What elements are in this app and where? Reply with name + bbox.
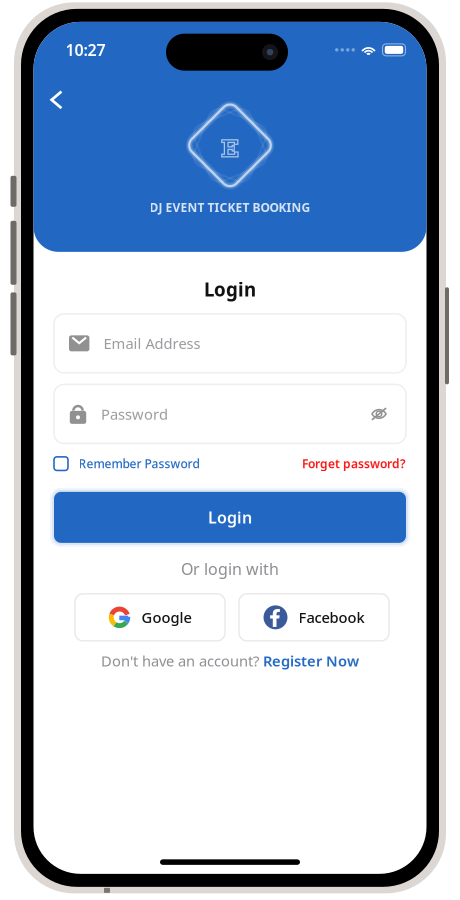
staticText: Remember Password (78, 456, 199, 472)
button[interactable]: Register Now (263, 651, 359, 671)
button[interactable]: Back (38, 84, 74, 116)
staticText: Register Now (263, 651, 359, 671)
staticText: Google (141, 608, 191, 627)
button[interactable]: Google (75, 594, 225, 641)
staticText: Or login with (181, 558, 279, 579)
staticText: Password (101, 404, 168, 424)
button[interactable]: Forget password? (302, 456, 406, 472)
button[interactable]: Facebook (239, 594, 389, 641)
staticText: Forget password? (302, 456, 406, 472)
button[interactable]: Remember Password (54, 456, 199, 472)
staticText: Don't have an account? (101, 651, 259, 671)
staticText: DJ EVENT TICKET BOOKING (149, 199, 310, 215)
button[interactable]: Show password (365, 400, 393, 428)
staticText: Login (208, 507, 252, 528)
staticText: Login (204, 277, 256, 302)
staticText: Email Address (103, 334, 200, 353)
staticText: Facebook (298, 608, 364, 627)
button[interactable]: Login (50, 488, 410, 547)
staticText: 10:27 (65, 39, 105, 60)
